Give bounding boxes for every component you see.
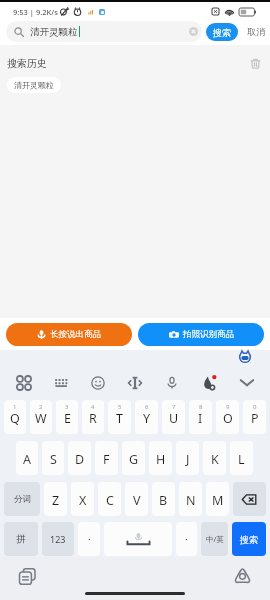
- button[interactable]: 123: [42, 522, 74, 556]
- button[interactable]: 5: [108, 400, 131, 434]
- staticText: 8: [199, 403, 203, 411]
- staticText: P: [251, 410, 259, 427]
- staticText: 搜索: [240, 534, 258, 545]
- button[interactable]: ·: [176, 522, 197, 556]
- staticText: D: [75, 451, 85, 468]
- button[interactable]: 3: [56, 400, 78, 434]
- staticText: A: [23, 451, 31, 468]
- staticText: 搜索: [213, 27, 231, 38]
- button[interactable]: 8: [189, 400, 212, 434]
- button[interactable]: Voice input: [161, 372, 183, 394]
- staticText: E: [64, 410, 71, 427]
- staticText: 6: [145, 403, 149, 411]
- button[interactable]: N: [179, 482, 202, 516]
- staticText: R: [89, 410, 97, 427]
- staticText: B: [159, 492, 168, 509]
- staticText: M: [212, 492, 224, 509]
- button[interactable]: M: [206, 482, 229, 516]
- staticText: 123: [50, 533, 66, 545]
- button[interactable]: Trending: [198, 372, 220, 394]
- button[interactable]: Number keypad: [50, 372, 72, 394]
- button[interactable]: Back: [233, 566, 252, 585]
- button[interactable]: V: [125, 482, 148, 516]
- button[interactable]: A: [16, 441, 38, 475]
- button[interactable]: 清开灵颗粒: [7, 77, 61, 93]
- staticText: 3: [65, 403, 69, 411]
- staticText: G: [129, 451, 139, 468]
- button[interactable]: 0: [243, 400, 266, 434]
- button[interactable]: H: [149, 441, 172, 475]
- button[interactable]: L: [230, 441, 253, 475]
- staticText: U: [169, 410, 179, 427]
- button[interactable]: Keyboard layouts: [13, 372, 35, 394]
- button[interactable]: 拍照识别商品: [138, 323, 264, 346]
- button[interactable]: 2: [30, 400, 52, 434]
- staticText: 4: [91, 403, 95, 411]
- staticText: 取消: [247, 26, 265, 37]
- button[interactable]: 中/英: [201, 522, 228, 556]
- staticText: K: [211, 451, 219, 468]
- staticText: Q: [10, 410, 20, 427]
- button[interactable]: 搜索: [206, 23, 238, 41]
- button[interactable]: Hide keyboard: [236, 372, 258, 394]
- button[interactable]: Clear text: [189, 27, 198, 36]
- button[interactable]: ·: [78, 522, 100, 556]
- staticText: Z: [52, 492, 60, 509]
- button[interactable]: 搜索: [232, 522, 266, 556]
- button[interactable]: 6: [135, 400, 158, 434]
- staticText: 0: [253, 403, 257, 411]
- button[interactable]: Emoji: [87, 372, 109, 394]
- button[interactable]: X: [71, 482, 94, 516]
- staticText: 9: [226, 403, 230, 411]
- button[interactable]: S: [42, 441, 64, 475]
- staticText: 拼: [16, 533, 26, 545]
- staticText: J: [186, 451, 190, 468]
- staticText: S: [50, 451, 57, 468]
- staticText: 2: [39, 403, 43, 411]
- button[interactable]: D: [68, 441, 91, 475]
- button[interactable]: G: [122, 441, 145, 475]
- staticText: 5: [118, 403, 122, 411]
- staticText: F: [103, 451, 110, 468]
- button[interactable]: J: [176, 441, 199, 475]
- staticText: W: [35, 410, 47, 427]
- button[interactable]: Clear search history: [247, 55, 263, 71]
- staticText: 7: [172, 403, 176, 411]
- button[interactable]: 长按说出商品: [6, 323, 132, 346]
- staticText: 中/英: [206, 534, 224, 544]
- button[interactable]: Move cursor: [124, 372, 146, 394]
- button[interactable]: C: [98, 482, 121, 516]
- staticText: T: [116, 410, 123, 427]
- button[interactable]: F: [95, 441, 118, 475]
- button[interactable]: 取消: [247, 26, 265, 37]
- staticText: ·: [185, 532, 188, 546]
- staticText: 1: [13, 403, 17, 411]
- staticText: V: [133, 492, 141, 509]
- button[interactable]: Z: [44, 482, 67, 516]
- button[interactable]: 拼: [4, 522, 38, 556]
- staticText: X: [79, 492, 87, 509]
- button[interactable]: Space: [104, 522, 172, 556]
- button[interactable]: 清开灵颗粒: [6, 21, 202, 42]
- button[interactable]: 分词: [4, 482, 40, 516]
- staticText: I: [198, 410, 203, 427]
- staticText: H: [156, 451, 166, 468]
- button[interactable]: K: [203, 441, 226, 475]
- button[interactable]: 4: [82, 400, 104, 434]
- staticText: Y: [143, 410, 151, 427]
- staticText: L: [238, 451, 245, 468]
- button[interactable]: 7: [162, 400, 185, 434]
- button[interactable]: 9: [216, 400, 239, 434]
- staticText: 拍照识别商品: [183, 329, 234, 340]
- button[interactable]: Recent apps: [17, 566, 38, 587]
- staticText: 9:53 | 9.2K/s: [13, 7, 58, 17]
- staticText: 清开灵颗粒: [30, 26, 78, 38]
- staticText: ·: [88, 532, 91, 546]
- staticText: 清开灵颗粒: [14, 80, 54, 90]
- staticText: 搜索历史: [7, 57, 47, 70]
- staticText: 分词: [14, 494, 31, 505]
- button[interactable]: B: [152, 482, 175, 516]
- button[interactable]: Home: [85, 592, 185, 595]
- button[interactable]: 1: [4, 400, 26, 434]
- button[interactable]: Backspace: [233, 482, 266, 516]
